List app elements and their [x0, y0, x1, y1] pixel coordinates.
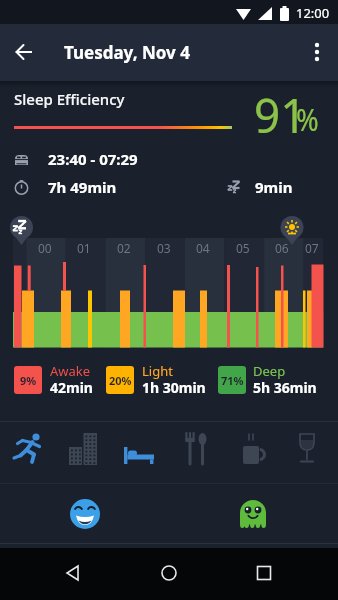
staticText: 07 — [305, 240, 319, 256]
staticText: 7h 49min — [48, 177, 117, 197]
staticText: 03 — [157, 240, 171, 256]
button[interactable] — [0, 143, 338, 203]
staticText: 91 — [254, 83, 307, 147]
staticText: 06 — [275, 240, 289, 256]
button[interactable]: 71% — [218, 366, 246, 394]
staticText: Deep — [253, 362, 286, 380]
staticText: 71% — [221, 373, 244, 388]
button[interactable] — [173, 426, 217, 470]
button[interactable]: 20% — [106, 366, 134, 394]
button[interactable] — [55, 490, 115, 538]
button[interactable] — [229, 426, 273, 470]
staticText: 12:00 — [296, 4, 330, 22]
staticText: Light — [142, 362, 173, 380]
staticText: % — [296, 97, 319, 139]
button[interactable] — [241, 550, 286, 595]
staticText: Tuesday, Nov 4 — [64, 41, 190, 64]
staticText: Sleep Efficiency — [14, 89, 125, 109]
staticText: Awake — [50, 362, 91, 380]
button[interactable] — [302, 37, 332, 67]
button[interactable] — [285, 426, 329, 470]
button[interactable] — [7, 426, 51, 470]
button[interactable] — [117, 426, 161, 470]
button[interactable] — [146, 550, 191, 595]
staticText: 9% — [20, 373, 37, 388]
staticText: 20% — [109, 373, 132, 388]
staticText: 01 — [77, 240, 91, 256]
staticText: 23:40 - 07:29 — [48, 149, 138, 169]
staticText: 1h 30min — [142, 378, 206, 397]
button[interactable] — [8, 36, 40, 68]
staticText: 05 — [236, 240, 250, 256]
button[interactable] — [223, 490, 283, 538]
staticText: 00 — [38, 240, 52, 256]
staticText: 5h 36min — [253, 378, 317, 397]
staticText: 04 — [196, 240, 210, 256]
staticText: 9min — [255, 177, 293, 197]
staticText: 02 — [117, 240, 131, 256]
staticText: 42min — [50, 378, 93, 397]
button[interactable] — [50, 550, 95, 595]
button[interactable] — [61, 426, 105, 470]
button[interactable]: 9% — [14, 366, 42, 394]
